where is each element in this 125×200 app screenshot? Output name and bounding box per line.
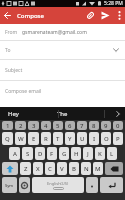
staticText: 2 <box>19 122 23 130</box>
button[interactable]: R <box>41 132 51 145</box>
staticText: B <box>72 165 76 173</box>
staticText: U <box>80 135 85 143</box>
button[interactable] <box>19 177 30 193</box>
button[interactable]: 4 <box>41 121 51 130</box>
staticText: N <box>84 165 89 173</box>
button[interactable]: Sym <box>2 177 17 193</box>
button[interactable]: G <box>59 147 69 160</box>
staticText: Compose email <box>5 88 42 95</box>
button[interactable]: Hey <box>8 110 19 118</box>
button[interactable]: To <box>0 41 125 59</box>
button[interactable]: The <box>57 110 68 118</box>
button[interactable] <box>2 162 18 175</box>
staticText: S <box>26 150 30 158</box>
button[interactable]: 7 <box>77 121 87 130</box>
staticText: 1 <box>6 122 10 130</box>
button[interactable]: C <box>45 162 55 175</box>
button[interactable]: N <box>81 162 91 175</box>
button[interactable] <box>83 7 98 24</box>
button[interactable]: E <box>28 132 39 145</box>
staticText: Subject <box>5 67 23 74</box>
staticText: A <box>13 150 17 158</box>
button[interactable]: K <box>95 147 105 160</box>
staticText: D <box>38 150 43 158</box>
staticText: Compose <box>17 12 44 20</box>
staticText: Y <box>68 135 72 143</box>
button[interactable]: Q <box>2 132 13 145</box>
button[interactable]: V <box>57 162 67 175</box>
staticText: K <box>98 150 102 158</box>
button[interactable] <box>116 111 120 117</box>
button[interactable] <box>105 162 123 175</box>
button[interactable]: F <box>47 147 57 160</box>
button[interactable]: 8 <box>89 121 99 130</box>
button[interactable]: I <box>89 132 99 145</box>
button[interactable]: X <box>33 162 43 175</box>
staticText: F <box>50 150 54 158</box>
staticText: 8 <box>92 122 96 130</box>
button[interactable]: 0 <box>113 121 123 130</box>
button[interactable]: J <box>83 147 93 160</box>
button[interactable] <box>113 7 125 24</box>
button[interactable] <box>0 7 15 24</box>
button[interactable]: U <box>77 132 87 145</box>
button[interactable] <box>98 7 113 24</box>
button[interactable]: Z <box>20 162 31 175</box>
staticText: P <box>116 135 120 143</box>
button[interactable]: 1 <box>2 121 13 130</box>
button[interactable]: S <box>22 147 33 160</box>
staticText: gsmarenateam@gmail.com <box>22 29 87 36</box>
button[interactable]: 9 <box>101 121 111 130</box>
button[interactable]: 2 <box>15 121 26 130</box>
staticText: L <box>110 150 114 158</box>
staticText: 4 <box>44 122 48 130</box>
staticText: T <box>56 135 60 143</box>
staticText: Z <box>24 165 28 173</box>
staticText: H <box>74 150 79 158</box>
button[interactable]: 6 <box>65 121 75 130</box>
button[interactable] <box>100 177 123 193</box>
staticText: V <box>60 165 64 173</box>
staticText: C <box>48 165 52 173</box>
button[interactable]: 5 <box>53 121 63 130</box>
staticText: English(US) <box>47 181 69 186</box>
staticText: 3 <box>32 122 36 130</box>
button[interactable]: H <box>71 147 81 160</box>
staticText: W <box>18 135 24 143</box>
button[interactable]: Y <box>65 132 75 145</box>
staticText: O <box>104 135 109 143</box>
staticText: To <box>5 47 11 54</box>
staticText: 5 <box>56 122 60 130</box>
staticText: Q <box>5 135 10 143</box>
button[interactable]: Compose email <box>0 81 125 107</box>
staticText: X <box>36 165 40 173</box>
staticText: J <box>87 150 89 158</box>
button[interactable]: A <box>9 147 20 160</box>
staticText: From <box>5 29 18 36</box>
button[interactable]: Subject <box>0 60 125 80</box>
button[interactable] <box>86 177 98 193</box>
staticText: G <box>62 150 67 158</box>
button[interactable]: T <box>53 132 63 145</box>
button[interactable]: 3 <box>28 121 39 130</box>
staticText: 6 <box>68 122 72 130</box>
staticText: 9 <box>104 122 108 130</box>
staticText: E <box>32 135 36 143</box>
staticText: I <box>93 135 96 143</box>
button[interactable]: P <box>113 132 123 145</box>
button[interactable]: O <box>101 132 111 145</box>
button[interactable]: L <box>107 147 117 160</box>
button[interactable]: W <box>15 132 26 145</box>
staticText: 5:28 PM <box>104 0 123 7</box>
staticText: R <box>44 135 48 143</box>
button[interactable]: English(US) <box>32 177 84 193</box>
button[interactable]: From <box>0 24 125 40</box>
staticText: M <box>95 165 101 173</box>
staticText: Sym <box>5 183 14 188</box>
button[interactable]: D <box>35 147 45 160</box>
staticText: 0 <box>116 122 120 130</box>
staticText: 7 <box>80 122 84 130</box>
button[interactable]: B <box>69 162 79 175</box>
button[interactable]: M <box>93 162 103 175</box>
